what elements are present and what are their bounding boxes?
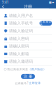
staticText: 请输入邮箱 <box>9 51 29 56</box>
button[interactable]: 我已阅读并同意 <box>0 67 56 71</box>
staticText: 《用户协议》 <box>28 68 46 71</box>
staticText: 我已阅读并同意 <box>7 68 28 71</box>
staticText: 注 册 <box>23 74 32 79</box>
staticText: 9:41 <box>2 1 9 4</box>
button[interactable]: 请输入密码 <box>0 35 56 42</box>
button[interactable]: 注 册 <box>21 74 35 79</box>
button[interactable]: 已有账号? <box>15 81 41 85</box>
button[interactable]: 请输入用户名 <box>0 12 56 19</box>
button[interactable]: 请确认密码 <box>0 43 56 50</box>
button[interactable]: Back <box>0 5 7 9</box>
staticText: 立即登录 <box>29 81 41 85</box>
button[interactable]: 请输入验证码 <box>0 27 56 34</box>
button[interactable]: 请输入邀请码 <box>0 58 56 65</box>
staticText: 获取验证码 <box>40 20 52 27</box>
staticText: 请输入验证码 <box>9 28 33 33</box>
staticText: 请输入邀请码 <box>9 59 33 64</box>
button[interactable]: 请输入邮箱 <box>0 50 56 57</box>
staticText: 已有账号? <box>15 81 28 85</box>
staticText: 请确认密码 <box>9 44 29 49</box>
staticText: 请输入密码 <box>9 36 29 41</box>
staticText: 请输入用户名 <box>9 13 33 18</box>
button[interactable]: 获取验证码 <box>39 21 52 26</box>
staticText: 注册 <box>24 4 32 9</box>
staticText: ▮▮ ▰ <box>49 1 54 4</box>
staticText: 请输入手机号 <box>9 21 33 26</box>
